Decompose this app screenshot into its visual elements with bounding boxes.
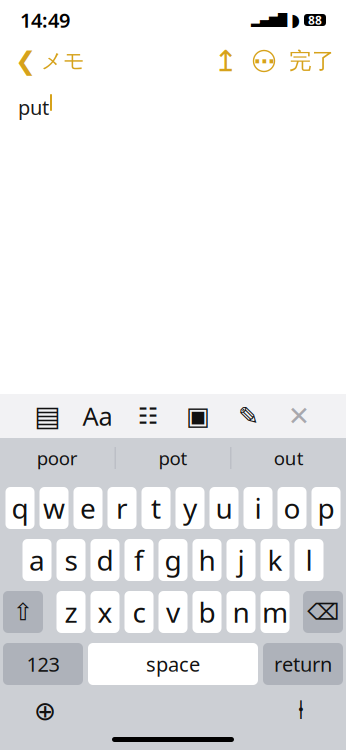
staticText: c	[132, 593, 145, 631]
button[interactable]: Close keyboard	[280, 394, 318, 438]
button[interactable]: q	[5, 487, 34, 529]
button[interactable]: x	[90, 591, 119, 633]
staticText: z	[64, 593, 77, 631]
staticText: m	[262, 593, 288, 631]
button[interactable]: l	[294, 539, 323, 581]
staticText: space	[146, 651, 200, 677]
button[interactable]: Table	[28, 394, 66, 438]
button[interactable]: m	[260, 591, 289, 633]
staticText: p	[317, 489, 334, 527]
staticText: w	[43, 489, 65, 527]
staticText: 88	[308, 12, 322, 28]
staticText: q	[11, 489, 28, 527]
staticText: 完了	[289, 47, 335, 75]
button[interactable]: poor	[0, 438, 115, 478]
staticText: x	[97, 593, 112, 631]
staticText: l	[305, 541, 312, 579]
staticText: g	[164, 541, 181, 579]
staticText: メモ	[41, 48, 85, 74]
button[interactable]: o	[277, 487, 306, 529]
staticText: ▂▄▆█	[251, 13, 287, 27]
button[interactable]: f	[124, 539, 153, 581]
button[interactable]: return	[263, 643, 343, 685]
staticText: ◗	[291, 10, 300, 30]
staticText: return	[274, 651, 332, 677]
staticText: ⌫	[307, 599, 339, 625]
button[interactable]: e	[73, 487, 102, 529]
button[interactable]: p	[311, 487, 340, 529]
staticText: t	[151, 489, 161, 527]
staticText: ❮	[15, 47, 36, 75]
staticText: k	[267, 541, 282, 579]
button[interactable]: Camera	[179, 394, 217, 438]
staticText: o	[283, 489, 300, 527]
staticText: ⇧	[13, 598, 33, 626]
button[interactable]: ⌫	[303, 591, 343, 633]
button[interactable]: 完了	[285, 40, 335, 82]
staticText: i	[254, 489, 261, 527]
button[interactable]: space	[88, 643, 258, 685]
staticText: v	[166, 593, 180, 631]
staticText: h	[198, 541, 215, 579]
staticText: j	[237, 541, 244, 579]
button[interactable]: b	[192, 591, 221, 633]
button[interactable]: c	[124, 591, 153, 633]
button[interactable]: t	[141, 487, 170, 529]
staticText: poor	[37, 446, 78, 470]
button[interactable]: y	[175, 487, 204, 529]
staticText: f	[134, 541, 144, 579]
button[interactable]: out	[231, 438, 346, 478]
button[interactable]: s	[56, 539, 85, 581]
button[interactable]: h	[192, 539, 221, 581]
staticText: d	[96, 541, 113, 579]
staticText: ⍿	[297, 698, 304, 724]
button[interactable]: g	[158, 539, 187, 581]
button[interactable]: Dictation	[281, 695, 321, 727]
staticText: ↥	[213, 44, 238, 78]
button[interactable]: v	[158, 591, 187, 633]
staticText: ✎	[238, 402, 259, 430]
button[interactable]: u	[209, 487, 238, 529]
staticText: 123	[26, 651, 59, 677]
button[interactable]: k	[260, 539, 289, 581]
staticText: r	[116, 489, 128, 527]
staticText: ⋯	[253, 49, 274, 73]
staticText: ▣	[186, 402, 210, 430]
button[interactable]: ⇧	[3, 591, 43, 633]
staticText: ☷	[138, 403, 158, 429]
button[interactable]: Checklist	[129, 394, 167, 438]
staticText: b	[198, 593, 215, 631]
staticText: u	[215, 489, 232, 527]
button[interactable]: 123	[3, 643, 83, 685]
button[interactable]: z	[56, 591, 85, 633]
button[interactable]: i	[243, 487, 272, 529]
staticText: out	[274, 446, 304, 470]
staticText: Aa	[83, 399, 113, 433]
button[interactable]: Change keyboard	[25, 695, 65, 727]
staticText: e	[80, 489, 96, 527]
button[interactable]: Markup	[229, 394, 267, 438]
staticText: ▤	[34, 400, 60, 432]
button[interactable]: r	[107, 487, 136, 529]
staticText: ⊕	[34, 696, 56, 726]
staticText: 14:49	[20, 7, 70, 33]
staticText: a	[29, 541, 45, 579]
button[interactable]: d	[90, 539, 119, 581]
button[interactable]: Text format	[79, 394, 117, 438]
staticText: ✕	[288, 401, 310, 431]
button[interactable]: More options	[243, 40, 285, 82]
button[interactable]: n	[226, 591, 255, 633]
staticText: pot	[158, 446, 187, 470]
button[interactable]: w	[39, 487, 68, 529]
staticText: put	[18, 94, 49, 121]
staticText: s	[64, 541, 77, 579]
button[interactable]: Share	[209, 40, 243, 82]
button[interactable]: a	[22, 539, 51, 581]
button[interactable]: pot	[116, 438, 230, 478]
staticText: y	[183, 489, 197, 527]
staticText: n	[232, 593, 249, 631]
button[interactable]: ❮	[11, 40, 89, 82]
button[interactable]: j	[226, 539, 255, 581]
